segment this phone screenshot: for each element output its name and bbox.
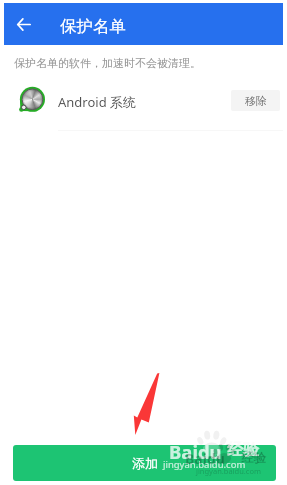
staticText: 经验: [227, 440, 259, 460]
button[interactable]: Back: [7, 3, 41, 45]
staticText: 保护名单: [60, 16, 126, 37]
staticText: Baidu: [169, 439, 222, 464]
staticText: 经验: [227, 440, 259, 460]
staticText: 经验: [241, 450, 266, 466]
button[interactable]: Android 系统: [4, 78, 283, 129]
staticText: jingyan.baidu.com: [196, 466, 261, 476]
staticText: jingyan.baidu.com: [163, 458, 246, 471]
button[interactable]: 添加: [13, 445, 276, 481]
staticText: Android 系统: [58, 93, 137, 111]
button[interactable]: 移除: [231, 90, 280, 111]
staticText: 添加: [132, 455, 158, 471]
staticText: Baidu: [185, 449, 225, 468]
staticText: 移除: [245, 94, 267, 108]
staticText: 保护名单的软件，加速时不会被清理。: [14, 56, 201, 70]
staticText: Baidu: [169, 439, 222, 464]
